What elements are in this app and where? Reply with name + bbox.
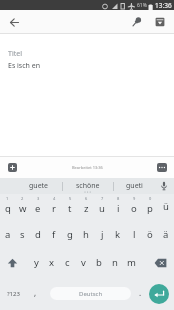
staticText: 6 [85, 196, 88, 201]
button[interactable]: f [46, 221, 62, 249]
button[interactable] [6, 14, 22, 30]
button[interactable]: b [91, 249, 107, 277]
staticText: p [147, 202, 153, 215]
staticText: 13:36 [155, 1, 172, 10]
staticText: 61% [137, 2, 147, 9]
staticText: guete [29, 181, 49, 191]
staticText: h [83, 228, 89, 241]
button[interactable]: 0 [142, 194, 158, 221]
button[interactable]: x [44, 249, 59, 277]
staticText: Es isch en [8, 61, 41, 71]
button[interactable]: gueti [114, 178, 154, 194]
button[interactable]: d [30, 221, 46, 249]
button[interactable]: l [126, 221, 142, 249]
staticText: o [131, 202, 137, 215]
staticText: 0 [149, 196, 152, 201]
staticText: f [52, 228, 56, 241]
staticText: s [20, 228, 25, 241]
staticText: b [96, 256, 102, 269]
button[interactable] [8, 163, 17, 172]
button[interactable]: g [62, 221, 78, 249]
staticText: k [115, 228, 121, 241]
staticText: m [127, 256, 136, 269]
staticText: c [65, 256, 70, 269]
button[interactable]: s [15, 221, 30, 249]
button[interactable]: . [131, 277, 149, 310]
button[interactable]: 1 [0, 194, 15, 221]
button[interactable] [149, 284, 169, 304]
button[interactable] [130, 15, 144, 29]
staticText: gueti [126, 181, 143, 191]
staticText: g [67, 228, 73, 241]
staticText: w [19, 202, 27, 215]
button[interactable] [0, 249, 25, 277]
button[interactable] [154, 178, 174, 194]
button[interactable]: 8 [110, 194, 126, 221]
staticText: z [84, 202, 89, 215]
button[interactable]: schöne [63, 178, 113, 194]
button[interactable]: c [59, 249, 75, 277]
staticText: 3 [37, 196, 40, 201]
staticText: l [133, 228, 136, 241]
staticText: , [34, 287, 37, 298]
button[interactable]: ä [158, 221, 174, 249]
button[interactable]: 2 [15, 194, 30, 221]
staticText: j [101, 228, 104, 241]
staticText: 1 [6, 196, 9, 201]
staticText: Deutsch [79, 290, 103, 298]
staticText: n [112, 256, 118, 269]
staticText: 5 [69, 196, 72, 201]
button[interactable]: k [110, 221, 126, 249]
button[interactable] [139, 249, 174, 277]
button[interactable]: guete [16, 178, 62, 194]
button[interactable]: y [29, 249, 44, 277]
staticText: t [68, 202, 72, 215]
staticText: y [34, 256, 39, 269]
staticText: d [35, 228, 41, 241]
staticText: schöne [76, 181, 100, 191]
button[interactable]: 3 [30, 194, 46, 221]
button[interactable]: m [123, 249, 139, 277]
button[interactable]: 6 [78, 194, 94, 221]
button[interactable]: 9 [126, 194, 142, 221]
staticText: e [35, 202, 41, 215]
button[interactable]: 7 [94, 194, 110, 221]
staticText: 4 [53, 196, 56, 201]
staticText: . [139, 287, 142, 298]
staticText: ü [163, 200, 169, 213]
button[interactable]: ö [142, 221, 158, 249]
staticText: 9 [133, 196, 136, 201]
staticText: x [49, 256, 55, 269]
staticText: 2 [21, 196, 24, 201]
button[interactable]: 4 [46, 194, 62, 221]
staticText: i [117, 202, 120, 215]
staticText: ?123 [7, 290, 20, 298]
staticText: v [81, 256, 86, 269]
button[interactable]: 5 [62, 194, 78, 221]
button[interactable]: n [107, 249, 123, 277]
button[interactable] [157, 163, 167, 172]
staticText: 8 [117, 196, 120, 201]
staticText: r [52, 202, 56, 215]
button[interactable]: v [75, 249, 91, 277]
button[interactable]: , [27, 277, 43, 310]
button[interactable]: ?123 [0, 277, 27, 310]
staticText: 7 [101, 196, 104, 201]
staticText: a [5, 228, 11, 241]
staticText: ä [163, 228, 169, 241]
button[interactable]: ü [158, 194, 174, 221]
button[interactable]: a [0, 221, 15, 249]
staticText: Titel [8, 49, 22, 59]
button[interactable] [153, 15, 167, 29]
staticText: Bearbeitet 13:36 [72, 165, 103, 170]
staticText: ö [147, 228, 153, 241]
button[interactable]: j [94, 221, 110, 249]
staticText: q [5, 202, 11, 215]
staticText: u [99, 202, 105, 215]
button[interactable]: h [78, 221, 94, 249]
button[interactable]: Deutsch [50, 287, 131, 300]
